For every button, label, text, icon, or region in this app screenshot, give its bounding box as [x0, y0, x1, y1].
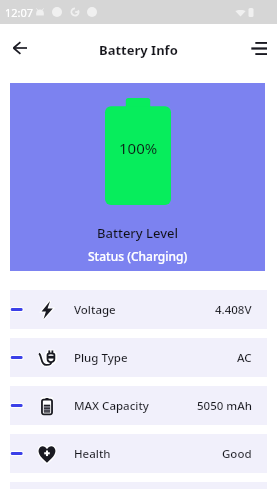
- staticText: 100%: [119, 138, 158, 158]
- button[interactable]: Back: [6, 34, 34, 62]
- staticText: Battery Level: [97, 224, 179, 242]
- staticText: Health: [74, 446, 111, 462]
- staticText: AC: [237, 350, 252, 366]
- button[interactable]: Plug Type: [10, 338, 267, 377]
- button[interactable]: MAX Capacity: [10, 386, 267, 425]
- staticText: Status (Charging): [88, 248, 188, 264]
- staticText: 4.408V: [215, 302, 252, 318]
- button[interactable]: Health: [10, 434, 267, 473]
- staticText: Plug Type: [74, 350, 128, 366]
- staticText: Voltage: [74, 302, 116, 318]
- staticText: Battery Info: [99, 41, 178, 59]
- button[interactable]: Menu: [245, 34, 273, 62]
- staticText: MAX Capacity: [74, 398, 149, 414]
- staticText: 5050 mAh: [197, 398, 252, 414]
- staticText: Good: [222, 446, 252, 462]
- staticText: 12:07: [5, 5, 34, 20]
- button[interactable]: Voltage: [10, 290, 267, 329]
